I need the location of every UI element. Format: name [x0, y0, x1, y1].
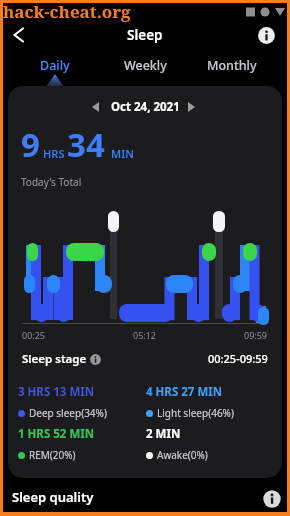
staticText: 34 [67, 122, 105, 167]
button[interactable]: Sleep quality [0, 484, 290, 514]
staticText: Sleep quality [12, 488, 94, 506]
staticText: Sleep stage [22, 351, 87, 367]
button[interactable]: Daily [24, 53, 86, 77]
button[interactable]: Weekly [114, 53, 176, 77]
staticText: Weekly [124, 57, 167, 74]
button[interactable] [257, 26, 275, 44]
staticText: 00:25 [22, 329, 46, 341]
staticText: hack-cheat.org [3, 0, 131, 23]
staticText: Today's Total [21, 175, 82, 189]
staticText: 09:59 [244, 329, 268, 341]
staticText: 2 MIN [146, 426, 181, 442]
staticText: Deep sleep(34%) [29, 406, 107, 420]
staticText: 9 [21, 122, 40, 167]
staticText: 05:12 [133, 329, 157, 341]
staticText: Oct 24, 2021 [111, 99, 180, 115]
staticText: Awake(0%) [157, 448, 208, 462]
staticText: 4 HRS 27 MIN [146, 384, 223, 400]
staticText: Sleep [127, 26, 163, 44]
button[interactable] [86, 98, 104, 116]
button[interactable] [182, 98, 200, 116]
button[interactable]: Monthly [201, 53, 263, 77]
button[interactable] [6, 24, 30, 46]
staticText: 1 HRS 52 MIN [18, 426, 95, 442]
staticText: MIN [111, 146, 135, 161]
staticText: Light sleep(46%) [157, 406, 234, 420]
staticText: 3 HRS 13 MIN [18, 384, 95, 400]
staticText: HRS [43, 146, 65, 161]
staticText: Daily [40, 57, 70, 74]
staticText: 00:25-09:59 [208, 351, 268, 366]
staticText: REM(20%) [29, 448, 76, 462]
staticText: Monthly [207, 57, 257, 74]
